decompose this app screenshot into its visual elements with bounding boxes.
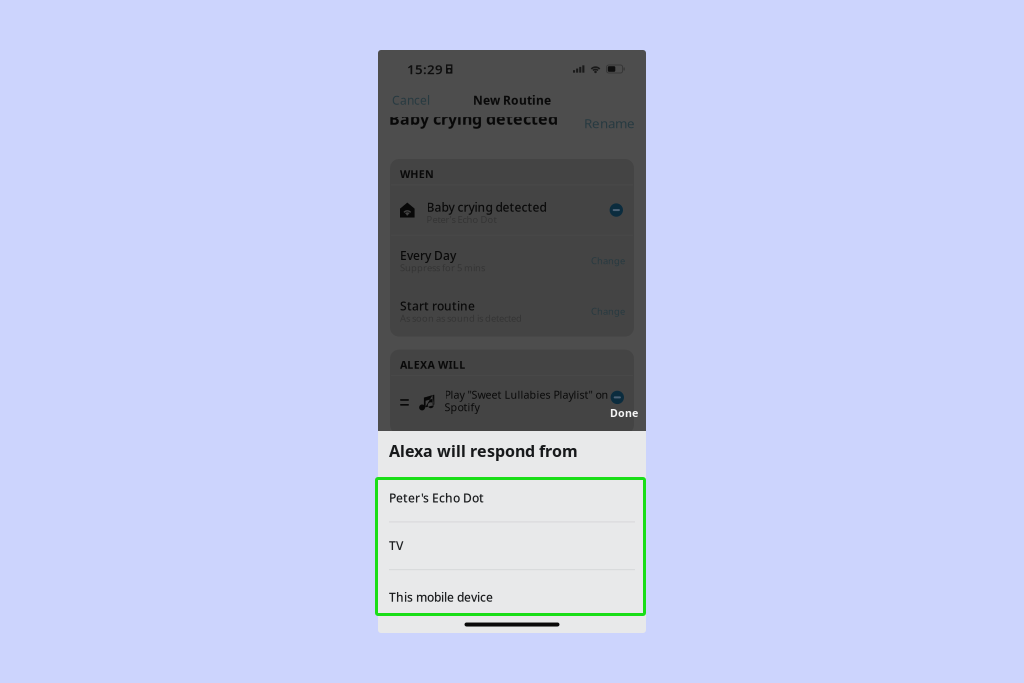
staticText: Spotify: [444, 400, 479, 414]
button[interactable]: Change: [588, 301, 628, 321]
button[interactable]: Cancel: [388, 87, 434, 113]
button[interactable]: TV: [378, 522, 646, 569]
button[interactable]: Remove action: [611, 391, 624, 404]
staticText: Peter's Echo Dot: [427, 213, 497, 226]
staticText: Rename: [584, 114, 635, 132]
staticText: Done: [610, 406, 638, 420]
button[interactable]: Remove trigger: [610, 203, 623, 217]
button[interactable]: Peter's Echo Dot: [378, 478, 646, 521]
button[interactable]: Done: [606, 403, 642, 423]
staticText: Suppress for 5 mins: [400, 261, 485, 274]
button[interactable]: Change: [588, 250, 628, 271]
staticText: Every Day: [400, 247, 456, 263]
staticText: TV: [389, 538, 403, 554]
staticText: ALEXA WILL: [400, 358, 465, 372]
staticText: New Routine: [473, 92, 551, 108]
staticText: WHEN: [400, 167, 434, 181]
staticText: As soon as sound is detected: [400, 312, 522, 324]
staticText: This mobile device: [389, 589, 493, 605]
button[interactable]: This mobile device: [378, 570, 646, 614]
staticText: Start routine: [400, 298, 475, 314]
staticText: Baby crying detected: [389, 108, 558, 129]
staticText: 15:29: [407, 60, 443, 78]
button[interactable]: Rename: [580, 110, 639, 136]
staticText: Alexa will respond from: [389, 440, 578, 461]
staticText: Change: [591, 305, 625, 317]
staticText: Baby crying detected: [427, 199, 547, 215]
staticText: Change: [591, 254, 625, 267]
staticText: Play "Sweet Lullabies Playlist" on: [444, 387, 608, 402]
staticText: Cancel: [392, 92, 430, 108]
staticText: Peter's Echo Dot: [389, 490, 484, 506]
